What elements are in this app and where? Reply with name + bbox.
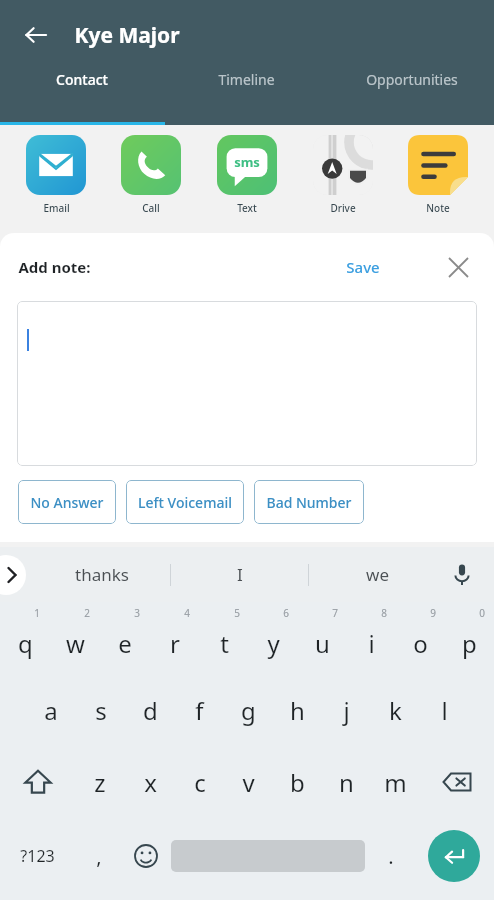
button[interactable]: q bbox=[0, 602, 50, 674]
button[interactable]: More suggestions bbox=[0, 555, 26, 595]
button[interactable]: Enter bbox=[414, 818, 494, 894]
staticText: 3 bbox=[134, 606, 140, 620]
button[interactable]: z bbox=[75, 746, 125, 818]
staticText: 4 bbox=[184, 606, 190, 620]
button[interactable]: f bbox=[175, 674, 224, 746]
button[interactable]: . bbox=[367, 818, 414, 894]
button[interactable]: b bbox=[273, 746, 322, 818]
button[interactable]: sms bbox=[207, 125, 287, 215]
staticText: Timeline bbox=[218, 70, 275, 89]
staticText: g bbox=[241, 694, 256, 727]
staticText: z bbox=[94, 766, 106, 799]
staticText: w bbox=[66, 627, 85, 660]
button[interactable]: Drive bbox=[303, 125, 383, 215]
button[interactable]: g bbox=[224, 674, 273, 746]
staticText: s bbox=[95, 694, 107, 727]
staticText: Add note: bbox=[18, 257, 91, 277]
button[interactable]: Bad Number bbox=[254, 480, 364, 524]
staticText: 9 bbox=[430, 606, 436, 620]
button[interactable]: Space bbox=[169, 818, 367, 894]
button[interactable]: Timeline bbox=[164, 70, 329, 89]
staticText: I bbox=[237, 563, 243, 586]
staticText: n bbox=[339, 766, 354, 799]
button[interactable]: Backspace bbox=[420, 746, 494, 818]
button[interactable]: l bbox=[420, 674, 469, 746]
staticText: Drive bbox=[330, 201, 356, 215]
button[interactable]: Note bbox=[398, 125, 478, 215]
staticText: 2 bbox=[84, 606, 90, 620]
button[interactable]: e bbox=[100, 602, 150, 674]
button[interactable]: Emoji bbox=[122, 818, 169, 894]
button[interactable]: Voice input bbox=[442, 555, 482, 595]
staticText: l bbox=[441, 694, 448, 727]
staticText: Contact bbox=[56, 70, 108, 89]
button[interactable]: ?123 bbox=[0, 818, 75, 894]
button[interactable]: s bbox=[76, 674, 126, 746]
button[interactable]: y bbox=[249, 602, 298, 674]
staticText: . bbox=[388, 843, 394, 870]
button[interactable]: o bbox=[396, 602, 445, 674]
staticText: , bbox=[96, 843, 102, 870]
staticText: j bbox=[343, 694, 350, 727]
button[interactable]: h bbox=[273, 674, 322, 746]
staticText: No Answer bbox=[30, 493, 104, 512]
button[interactable]: Back bbox=[12, 11, 60, 59]
button[interactable]: t bbox=[200, 602, 249, 674]
staticText: o bbox=[413, 627, 428, 660]
staticText: i bbox=[368, 627, 375, 660]
button[interactable]: we bbox=[309, 563, 446, 586]
button[interactable]: Left Voicemail bbox=[126, 480, 244, 524]
button[interactable]: r bbox=[150, 602, 200, 674]
button[interactable]: u bbox=[298, 602, 347, 674]
staticText: Kye Major bbox=[74, 21, 180, 50]
staticText: k bbox=[389, 694, 402, 727]
staticText: Note bbox=[426, 201, 450, 215]
button[interactable]: i bbox=[347, 602, 396, 674]
staticText: 0 bbox=[479, 606, 485, 620]
button[interactable]: m bbox=[371, 746, 420, 818]
button[interactable]: c bbox=[175, 746, 224, 818]
button[interactable]: Save bbox=[336, 251, 390, 283]
staticText: Email bbox=[43, 201, 70, 215]
button[interactable]: Contact bbox=[0, 70, 164, 89]
button[interactable]: n bbox=[322, 746, 371, 818]
staticText: 7 bbox=[332, 606, 338, 620]
staticText: 6 bbox=[283, 606, 289, 620]
button[interactable]: Close bbox=[440, 249, 476, 285]
button[interactable]: p bbox=[445, 602, 494, 674]
button[interactable] bbox=[17, 301, 477, 466]
staticText: Opportunities bbox=[366, 70, 458, 89]
staticText: e bbox=[118, 627, 132, 660]
staticText: p bbox=[462, 627, 477, 660]
button[interactable]: No Answer bbox=[18, 480, 116, 524]
button[interactable]: Opportunities bbox=[329, 70, 494, 89]
button[interactable]: w bbox=[50, 602, 100, 674]
staticText: Call bbox=[142, 201, 160, 215]
button[interactable]: thanks bbox=[34, 563, 170, 586]
staticText: u bbox=[315, 627, 330, 660]
staticText: sms bbox=[234, 153, 260, 171]
staticText: 1 bbox=[34, 606, 40, 620]
button[interactable]: k bbox=[371, 674, 420, 746]
button[interactable]: a bbox=[26, 674, 76, 746]
button[interactable]: Email bbox=[16, 125, 96, 215]
staticText: b bbox=[290, 766, 305, 799]
button[interactable]: x bbox=[125, 746, 175, 818]
staticText: f bbox=[195, 694, 204, 727]
staticText: ?123 bbox=[20, 845, 55, 867]
button[interactable]: j bbox=[322, 674, 371, 746]
staticText: y bbox=[267, 627, 280, 660]
staticText: 5 bbox=[234, 606, 240, 620]
staticText: q bbox=[18, 627, 33, 660]
button[interactable]: Shift bbox=[0, 746, 75, 818]
staticText: Save bbox=[346, 257, 380, 277]
button[interactable]: v bbox=[224, 746, 273, 818]
staticText: 8 bbox=[381, 606, 387, 620]
button[interactable]: d bbox=[126, 674, 175, 746]
staticText: x bbox=[144, 766, 157, 799]
button[interactable]: , bbox=[75, 818, 122, 894]
staticText: t bbox=[220, 627, 229, 660]
staticText: c bbox=[194, 766, 206, 799]
button[interactable]: I bbox=[171, 563, 308, 586]
button[interactable]: Call bbox=[111, 125, 191, 215]
